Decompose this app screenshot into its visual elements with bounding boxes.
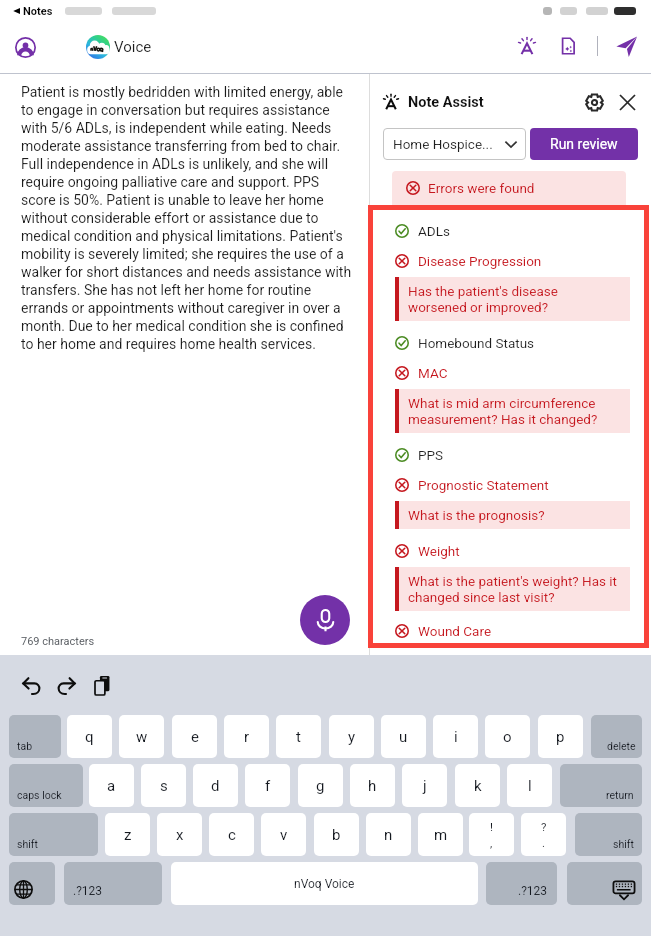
button[interactable]: Templates — [552, 30, 584, 62]
staticText: o — [503, 728, 512, 746]
button[interactable]: o — [485, 715, 530, 758]
staticText: Home Hospice... — [393, 136, 493, 152]
button[interactable]: z — [105, 813, 150, 856]
button[interactable]: caps lock — [9, 764, 83, 807]
button[interactable]: y — [329, 715, 374, 758]
button[interactable]: ? — [521, 813, 566, 856]
button[interactable]: Paste — [88, 669, 120, 701]
button[interactable]: Redo — [50, 669, 82, 701]
button[interactable]: shift — [9, 813, 98, 856]
button[interactable]: Prognostic Statement — [395, 470, 630, 500]
staticText: tab — [17, 740, 33, 752]
staticText: , — [490, 836, 493, 849]
button[interactable]: r — [224, 715, 269, 758]
staticText: y — [348, 728, 356, 746]
button[interactable]: ! — [469, 813, 514, 856]
button[interactable]: return — [560, 764, 642, 807]
button[interactable]: shift — [575, 813, 642, 856]
button[interactable]: a — [89, 764, 134, 807]
staticText: u — [399, 728, 408, 746]
button[interactable]: b — [314, 813, 359, 856]
button[interactable]: What is the patient's weight? Has it cha… — [395, 567, 630, 611]
staticText: h — [368, 777, 377, 795]
button[interactable]: Close — [612, 87, 642, 117]
staticText: Errors were found — [428, 180, 535, 196]
button[interactable]: w — [119, 715, 164, 758]
staticText: r — [244, 728, 250, 746]
button[interactable]: t — [276, 715, 321, 758]
button[interactable]: s — [141, 764, 186, 807]
button[interactable]: d — [193, 764, 238, 807]
button[interactable]: tab — [9, 715, 61, 758]
button[interactable]: j — [402, 764, 447, 807]
button[interactable]: Change keyboard language — [9, 862, 55, 905]
button[interactable]: h — [350, 764, 395, 807]
staticText: t — [296, 728, 301, 746]
staticText: Weight — [418, 543, 460, 559]
staticText: p — [556, 728, 565, 746]
button[interactable]: Home Hospice... — [383, 128, 526, 160]
button[interactable]: Account — [10, 32, 40, 62]
button[interactable]: nVoq Voice — [171, 862, 478, 905]
staticText: n — [384, 826, 393, 844]
staticText: q — [85, 728, 94, 746]
staticText: What is the prognosis? — [408, 507, 619, 523]
button[interactable]: Settings — [579, 87, 609, 117]
button[interactable]: i — [433, 715, 478, 758]
staticText: Disease Progression — [418, 253, 542, 269]
staticText: Voice — [114, 38, 152, 56]
button[interactable]: p — [538, 715, 583, 758]
staticText: .?123 — [518, 884, 548, 898]
button[interactable]: x — [157, 813, 202, 856]
staticText: Prognostic Statement — [418, 477, 549, 493]
staticText: w — [136, 728, 148, 746]
staticText: c — [228, 826, 236, 844]
button[interactable]: Has the patient's disease worsened or im… — [395, 277, 630, 321]
button[interactable]: k — [455, 764, 500, 807]
button[interactable]: What is the prognosis? — [395, 501, 630, 529]
button[interactable]: MAC — [395, 358, 630, 388]
staticText: Run review — [550, 136, 618, 152]
button[interactable]: Run review — [530, 128, 638, 160]
button[interactable]: l — [507, 764, 552, 807]
button[interactable]: ADLs — [395, 216, 630, 246]
staticText: PPS — [418, 447, 444, 463]
button[interactable]: delete — [591, 715, 642, 758]
staticText: caps lock — [17, 789, 62, 801]
button[interactable]: n — [366, 813, 411, 856]
button[interactable]: m — [418, 813, 463, 856]
staticText: Wound Care — [418, 623, 492, 639]
button[interactable]: g — [298, 764, 343, 807]
button[interactable]: Send — [610, 30, 642, 62]
staticText: Patient is mostly bedridden with limited… — [21, 84, 353, 352]
button[interactable]: .?123 — [64, 862, 162, 905]
button[interactable]: v — [261, 813, 306, 856]
button[interactable]: f — [245, 764, 290, 807]
button[interactable]: Disease Progression — [395, 246, 630, 276]
button[interactable]: Weight — [395, 536, 630, 566]
button[interactable]: AI formatting — [511, 30, 543, 62]
button[interactable]: c — [209, 813, 254, 856]
button[interactable]: Errors were found — [392, 171, 626, 211]
button[interactable]: q — [67, 715, 112, 758]
button[interactable]: What is mid arm circumference measuremen… — [395, 389, 630, 433]
button[interactable]: Hide keyboard — [567, 862, 642, 905]
button[interactable]: Homebound Status — [395, 328, 630, 358]
staticText: m — [434, 826, 448, 844]
staticText: x — [176, 826, 184, 844]
button[interactable]: Back to Notes — [12, 7, 20, 15]
button[interactable]: PPS — [395, 440, 630, 470]
staticText: nVoq Voice — [294, 877, 355, 891]
staticText: delete — [607, 740, 636, 752]
staticText: ? — [541, 820, 547, 833]
button[interactable]: u — [381, 715, 426, 758]
staticText: ! — [490, 820, 493, 833]
button[interactable]: Record voice — [300, 595, 350, 645]
button[interactable]: e — [172, 715, 217, 758]
staticText: return — [606, 789, 634, 801]
button[interactable]: Wound Care — [395, 618, 630, 643]
staticText: j — [423, 777, 427, 795]
staticText: b — [332, 826, 341, 844]
button[interactable]: Undo — [16, 669, 48, 701]
button[interactable]: .?123 — [486, 862, 557, 905]
